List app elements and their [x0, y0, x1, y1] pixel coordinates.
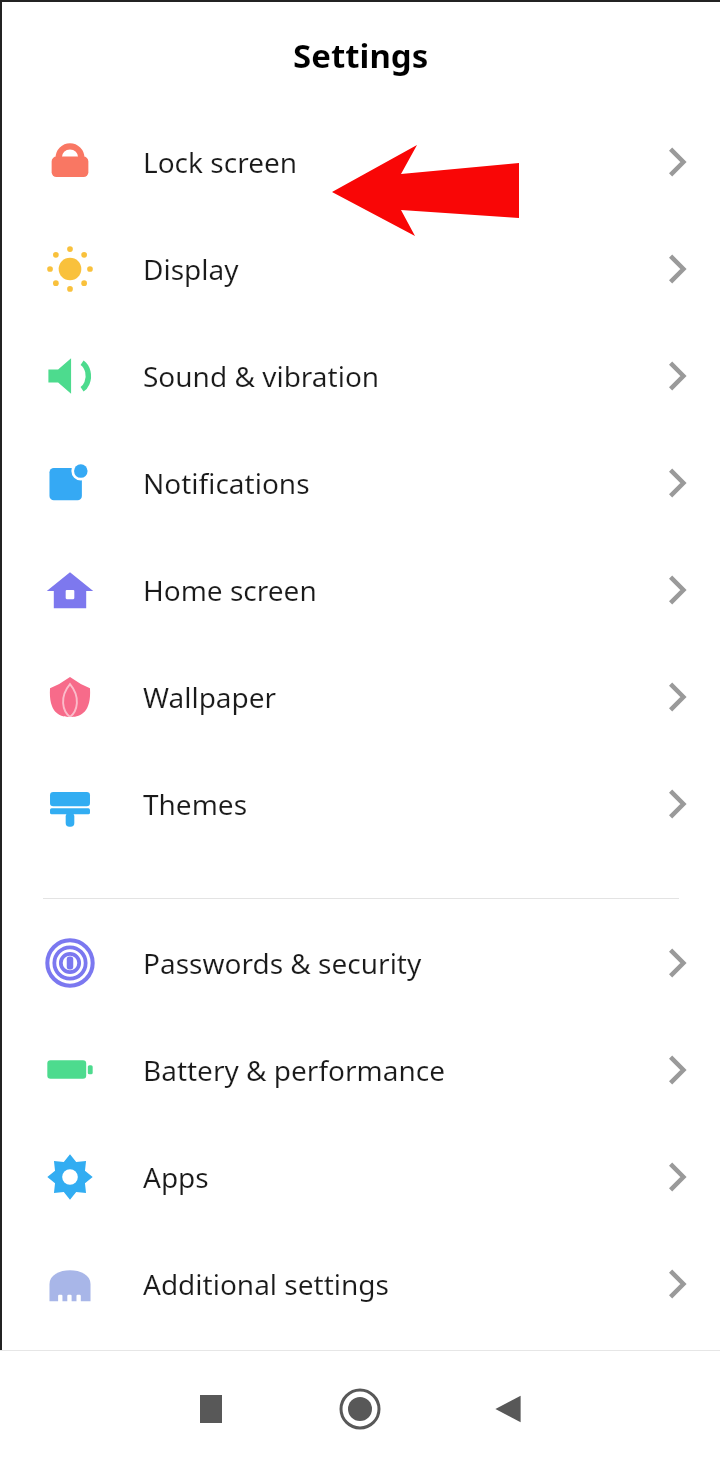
button[interactable]: Home: [324, 1373, 396, 1445]
button[interactable]: Home screen: [2, 536, 720, 643]
button[interactable]: Wallpaper: [2, 643, 720, 750]
button[interactable]: Recents: [176, 1373, 248, 1445]
staticText: Passwords & security: [143, 944, 657, 982]
staticText: Lock screen: [143, 143, 657, 181]
button[interactable]: Display: [2, 215, 720, 322]
staticText: Additional settings: [143, 1265, 657, 1303]
button[interactable]: Lock screen: [2, 108, 720, 215]
button[interactable]: Sound & vibration: [2, 322, 720, 429]
button[interactable]: Themes: [2, 750, 720, 857]
button[interactable]: Back: [472, 1373, 544, 1445]
staticText: Notifications: [143, 464, 657, 502]
staticText: Battery & performance: [143, 1051, 657, 1089]
button[interactable]: Apps: [2, 1123, 720, 1230]
staticText: Display: [143, 250, 657, 288]
staticText: Settings: [293, 33, 429, 78]
staticText: Themes: [143, 785, 657, 823]
staticText: Wallpaper: [143, 678, 657, 716]
button[interactable]: Additional settings: [2, 1230, 720, 1337]
button[interactable]: Battery & performance: [2, 1016, 720, 1123]
staticText: Home screen: [143, 571, 657, 609]
button[interactable]: Passwords & security: [2, 909, 720, 1016]
staticText: Apps: [143, 1158, 657, 1196]
button[interactable]: Notifications: [2, 429, 720, 536]
staticText: Sound & vibration: [143, 357, 657, 395]
